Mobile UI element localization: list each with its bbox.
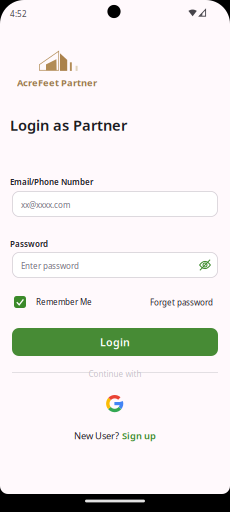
staticText: Continue with [88, 368, 141, 379]
staticText: AcreFeet Partner [17, 76, 97, 89]
button[interactable]: Enter password [12, 252, 218, 278]
staticText: Forget password [150, 297, 213, 308]
button[interactable]: Forget password [150, 297, 213, 308]
staticText: xx@xxxx.com [21, 199, 70, 210]
button[interactable]: xx@xxxx.com [12, 191, 218, 217]
staticText: Password [10, 238, 48, 249]
staticText: Enter password [21, 260, 79, 271]
button[interactable]: Sign up [122, 429, 156, 442]
staticText: Login as Partner [10, 115, 127, 135]
staticText: New User? [74, 429, 119, 442]
staticText: 4:52 [10, 8, 27, 19]
staticText: Login [100, 335, 130, 349]
button[interactable]: Login [12, 328, 218, 356]
staticText: Sign up [122, 429, 156, 442]
button[interactable]: Continue with Google [106, 395, 124, 413]
button[interactable]: Remember Me [14, 296, 92, 308]
button[interactable]: Show password [198, 257, 212, 273]
staticText: Remember Me [36, 297, 92, 307]
staticText: Email/Phone Number [10, 176, 93, 187]
